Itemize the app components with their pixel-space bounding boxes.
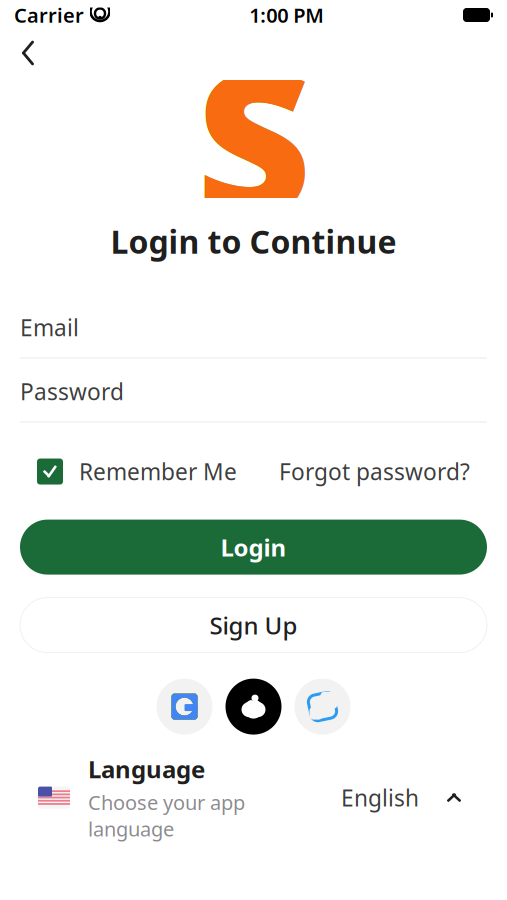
staticText: S (196, 6, 311, 272)
button[interactable]: Sign in with Apple (225, 679, 281, 735)
staticText: English (341, 782, 419, 813)
button[interactable]: Remember Me (37, 450, 237, 493)
button[interactable]: Forgot password? (279, 450, 470, 493)
staticText: 1:00 PM (249, 2, 324, 28)
staticText: Language (88, 753, 205, 785)
staticText: Sign Up (209, 609, 297, 641)
staticText: Email (20, 312, 79, 342)
staticText: Forgot password? (279, 456, 470, 487)
staticText: Choose your app language (88, 789, 245, 842)
button[interactable]: Sign in with phone number (294, 679, 350, 735)
staticText: Remember Me (79, 456, 237, 487)
staticText: Login (220, 531, 286, 563)
button[interactable]: Back (6, 31, 50, 75)
staticText: Carrier (14, 2, 84, 28)
staticText: Login to Continue (110, 220, 396, 262)
staticText: S (196, 6, 311, 272)
staticText: Password (20, 376, 124, 406)
button[interactable]: Sign in with Google (156, 679, 212, 735)
button[interactable]: Language (0, 767, 507, 829)
button[interactable]: Login (20, 520, 487, 575)
button[interactable]: Sign Up (20, 598, 487, 653)
